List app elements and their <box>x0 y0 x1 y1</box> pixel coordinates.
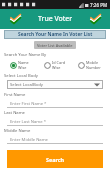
button[interactable]: Select LocalBody <box>7 80 103 89</box>
staticText: Search Your Name By <box>4 52 47 58</box>
staticText: Last Name <box>4 110 25 116</box>
staticText: Name <box>18 60 29 65</box>
button[interactable]: Enter Middle Name <box>7 135 103 144</box>
button[interactable]: Search Your Name In Voter List <box>4 30 106 39</box>
staticText: Search Your Name In Voter List <box>18 31 93 38</box>
staticText: Enter Last Name * <box>10 119 46 125</box>
staticText: Wise <box>18 65 27 70</box>
button[interactable]: Search <box>7 150 103 168</box>
staticText: 7:26 PM <box>90 2 108 8</box>
staticText: Number <box>86 65 101 70</box>
staticText: Middle Name <box>4 128 31 134</box>
staticText: Enter Middle Name <box>10 137 48 143</box>
staticText: Enter First Name * <box>10 101 47 107</box>
staticText: True Voter <box>38 14 73 24</box>
button[interactable]: Voter logo <box>8 13 22 25</box>
button[interactable]: Enter Last Name * <box>7 117 103 126</box>
staticText: Select LocalBody <box>10 82 43 88</box>
button[interactable]: Name <box>10 60 44 70</box>
staticText: Mobile <box>86 60 99 65</box>
button[interactable]: Enter First Name * <box>7 99 103 108</box>
button[interactable]: Voter List Available <box>34 41 76 49</box>
button[interactable]: Id Card <box>44 60 78 70</box>
staticText: Select Local Body <box>4 73 38 79</box>
staticText: Wise <box>52 65 61 70</box>
staticText: Id Card <box>52 60 65 65</box>
button[interactable]: Mobile <box>78 60 106 70</box>
staticText: Voter List Available <box>37 43 73 48</box>
staticText: Search <box>46 156 65 163</box>
button[interactable]: Voter logo <box>88 13 102 25</box>
staticText: First Name <box>4 92 26 98</box>
